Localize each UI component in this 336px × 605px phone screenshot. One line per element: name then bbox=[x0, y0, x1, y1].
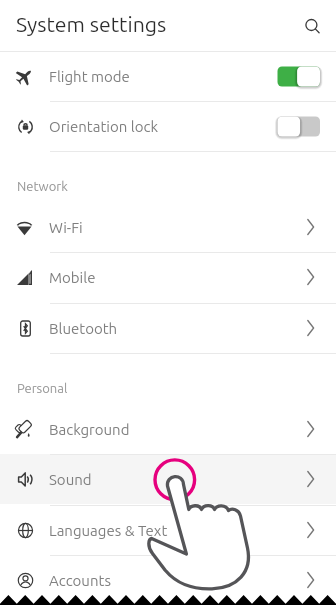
staticText: Languages & Text bbox=[49, 522, 168, 539]
staticText: Flight mode bbox=[49, 68, 130, 85]
button[interactable]: Orientation lock bbox=[0, 101, 336, 151]
staticText: Personal bbox=[17, 381, 68, 396]
staticText: Network bbox=[17, 179, 68, 194]
button: System settings bbox=[0, 0, 336, 51]
button[interactable]: Accounts bbox=[0, 555, 336, 605]
button[interactable]: Background bbox=[0, 404, 336, 454]
button[interactable]: Flight mode bbox=[0, 51, 336, 101]
button: Network bbox=[0, 151, 336, 202]
button[interactable]: Mobile bbox=[0, 252, 336, 302]
staticText: Accounts bbox=[49, 572, 111, 589]
staticText: Mobile bbox=[49, 269, 96, 286]
button[interactable]: Sound bbox=[0, 454, 336, 504]
staticText: Background bbox=[49, 421, 130, 438]
button[interactable]: Wi-Fi bbox=[0, 202, 336, 252]
button[interactable]: Search bbox=[290, 0, 336, 51]
staticText: System settings bbox=[16, 12, 167, 36]
staticText: Wi-Fi bbox=[49, 219, 83, 236]
staticText: Orientation lock bbox=[49, 118, 158, 135]
button[interactable]: Bluetooth bbox=[0, 303, 336, 353]
button[interactable]: Languages & Text bbox=[0, 505, 336, 555]
button: Personal bbox=[0, 353, 336, 404]
staticText: Sound bbox=[49, 471, 92, 488]
staticText: Bluetooth bbox=[49, 320, 118, 337]
